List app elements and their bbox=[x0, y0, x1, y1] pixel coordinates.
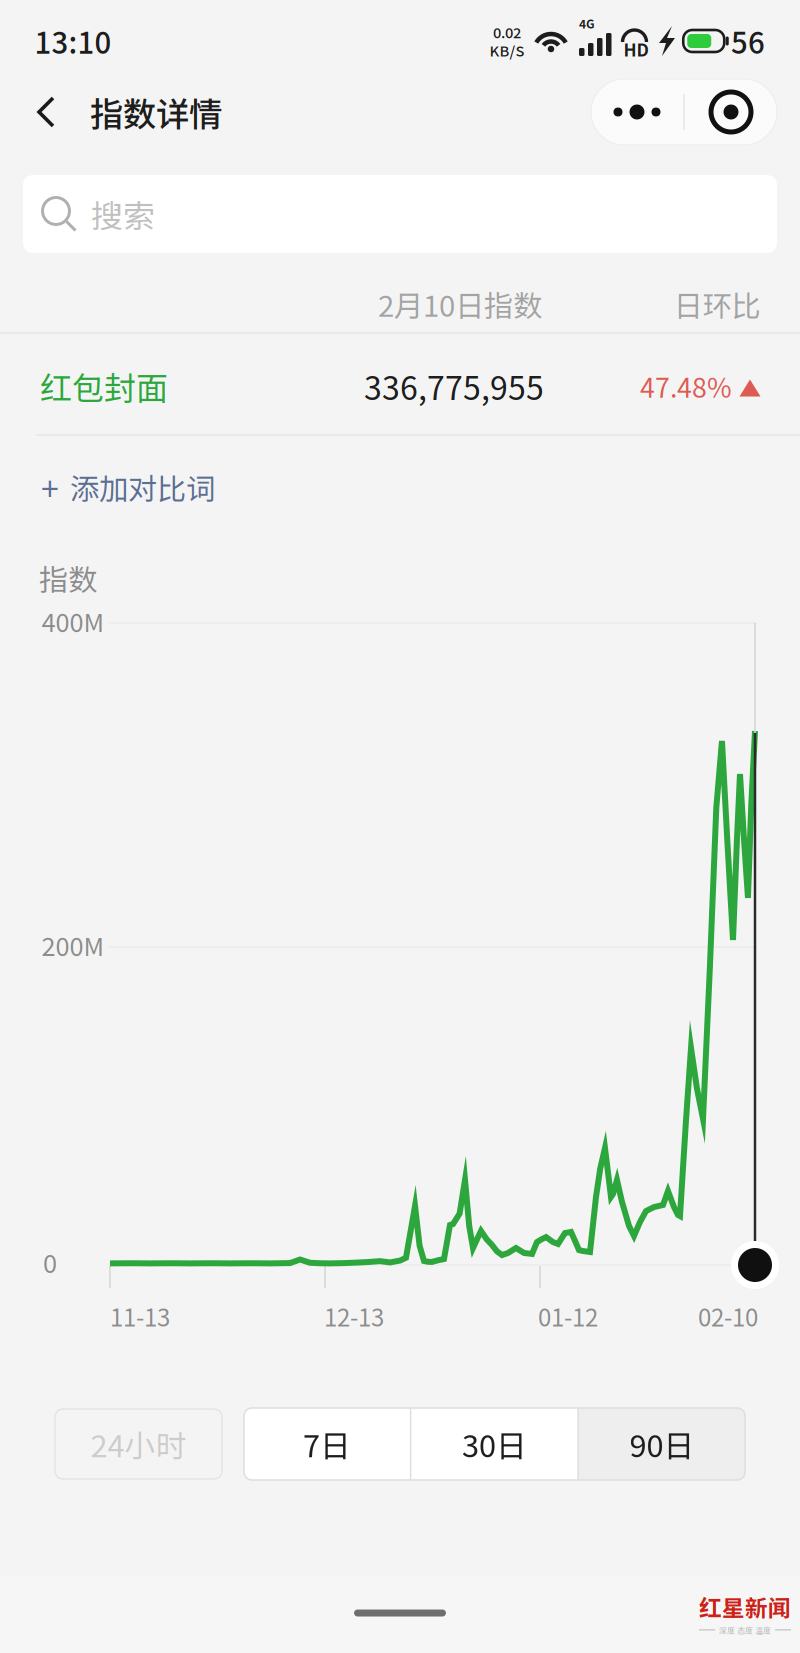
staticText: 2月10日指数 bbox=[378, 283, 542, 325]
button[interactable]: 30日 bbox=[411, 1408, 577, 1480]
staticText: 12-13 bbox=[324, 1299, 384, 1333]
staticText: 0 bbox=[43, 1244, 57, 1280]
staticText: 02-10 bbox=[698, 1299, 758, 1333]
staticText: 7日 bbox=[303, 1422, 351, 1466]
staticText: 47.48% bbox=[640, 367, 732, 405]
button[interactable]: 7日 bbox=[244, 1408, 410, 1480]
staticText: 深度 态度 温度 bbox=[719, 1624, 771, 1636]
staticText: 0.02 bbox=[493, 21, 521, 42]
staticText: 01-12 bbox=[538, 1299, 598, 1333]
button[interactable]: 搜索 bbox=[23, 175, 777, 253]
staticText: 指数详情 bbox=[90, 88, 222, 136]
button[interactable]: 24小时 bbox=[55, 1409, 222, 1479]
staticText: 添加对比词 bbox=[70, 466, 215, 508]
staticText: 400M bbox=[41, 603, 104, 639]
button[interactable]: + bbox=[41, 448, 341, 526]
staticText: 指数 bbox=[39, 557, 97, 599]
staticText: KB/S bbox=[489, 39, 524, 61]
staticText: 红包封面 bbox=[40, 363, 168, 409]
staticText: 红星新闻 bbox=[699, 1590, 791, 1623]
staticText: 336,775,955 bbox=[364, 363, 544, 409]
button[interactable]: More bbox=[591, 79, 683, 145]
button[interactable]: Back bbox=[14, 72, 78, 152]
staticText: 90日 bbox=[630, 1422, 695, 1466]
staticText: 200M bbox=[41, 927, 104, 963]
staticText: 24小时 bbox=[90, 1422, 186, 1466]
staticText: 日环比 bbox=[673, 283, 760, 325]
button[interactable]: 90日 bbox=[579, 1408, 745, 1480]
button[interactable]: Close mini program bbox=[685, 79, 777, 145]
staticText: 30日 bbox=[462, 1422, 527, 1466]
staticText: 13:10 bbox=[34, 20, 111, 62]
staticText: 56 bbox=[731, 20, 765, 62]
staticText: + bbox=[41, 464, 59, 510]
staticText: 搜索 bbox=[91, 191, 155, 237]
staticText: 4G bbox=[579, 15, 595, 32]
staticText: HD bbox=[623, 36, 648, 62]
staticText: 11-13 bbox=[110, 1299, 170, 1333]
